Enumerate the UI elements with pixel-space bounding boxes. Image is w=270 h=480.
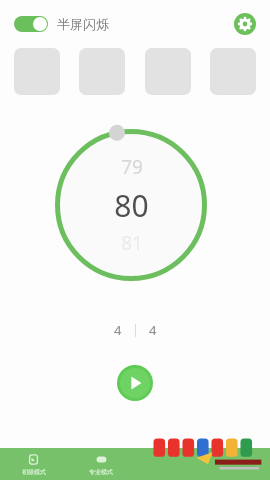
staticText: 初级模式 xyxy=(22,468,46,476)
button[interactable]: 4 xyxy=(136,317,170,343)
button[interactable]: Preset 3 xyxy=(145,48,191,95)
button[interactable]: 4 xyxy=(101,317,135,343)
staticText: 半屏闪烁 xyxy=(57,16,109,32)
staticText: 79 xyxy=(121,154,143,180)
button[interactable]: Preset 4 xyxy=(210,48,256,95)
staticText: 4 xyxy=(149,321,157,339)
button[interactable]: 半屏闪烁 xyxy=(14,16,109,32)
button[interactable]: Settings xyxy=(234,13,256,35)
button[interactable]: Preset 1 xyxy=(14,48,60,95)
staticText: 80 xyxy=(114,185,149,226)
button[interactable]: Value dial 80 xyxy=(55,129,207,281)
button[interactable]: 专业模式 xyxy=(67,448,135,480)
button[interactable]: 初级模式 xyxy=(0,448,67,480)
button[interactable]: Preset 2 xyxy=(79,48,125,95)
button[interactable]: Play xyxy=(117,365,153,401)
staticText: 专业模式 xyxy=(89,468,113,476)
staticText: 81 xyxy=(121,230,143,256)
staticText: 4 xyxy=(114,321,122,339)
